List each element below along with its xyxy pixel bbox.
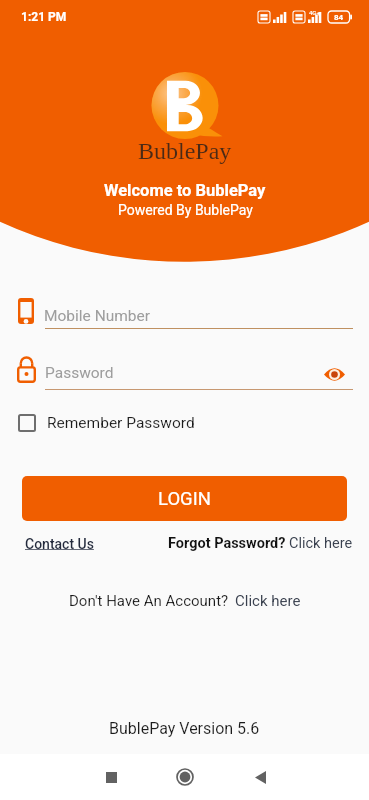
button[interactable]: Password [45, 361, 320, 379]
button[interactable]: LOGIN [22, 476, 347, 521]
button[interactable]: Mobile Number [18, 298, 353, 324]
staticText: Powered By BublePay [118, 202, 253, 218]
staticText: Remember Password [47, 414, 195, 432]
staticText: Password [45, 364, 114, 382]
staticText: Welcome to BublePay [104, 181, 266, 200]
staticText: Don't Have An Account? [69, 592, 229, 610]
staticText: LOGIN [158, 488, 211, 510]
button[interactable]: Click here [235, 592, 301, 610]
button[interactable]: Back [242, 759, 278, 795]
staticText: 4G+ [309, 9, 320, 16]
button[interactable]: Contact Us [25, 536, 94, 552]
staticText: BublePay [138, 138, 232, 165]
staticText: 84 [334, 13, 344, 22]
button[interactable]: Home [167, 759, 203, 795]
button[interactable]: Remember Password [18, 410, 195, 435]
button[interactable]: Recents [93, 759, 129, 795]
button[interactable]: Click here [289, 535, 353, 552]
button[interactable]: Show password [320, 356, 348, 383]
staticText: BublePay Version 5.6 [109, 719, 260, 738]
staticText: Forgot Password? [168, 535, 286, 552]
staticText: 1:21 PM [21, 10, 67, 24]
staticText: Mobile Number [44, 307, 151, 325]
